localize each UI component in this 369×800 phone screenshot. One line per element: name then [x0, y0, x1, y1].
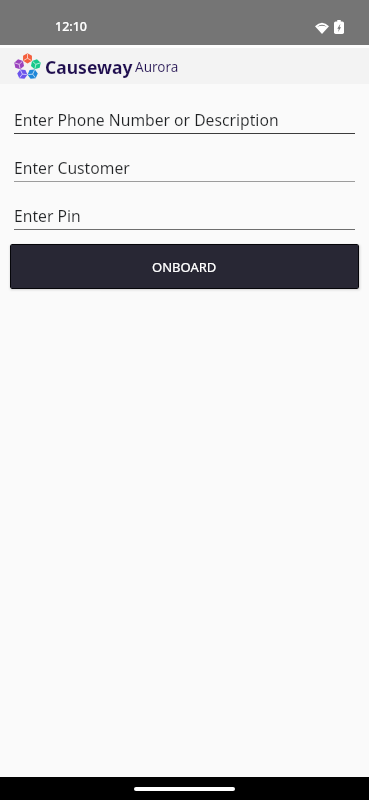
other: Wi-Fi — [315, 22, 329, 34]
button[interactable]: Home — [134, 787, 235, 791]
staticText: Enter Phone Number or Description — [14, 109, 279, 130]
staticText: ONBOARD — [152, 258, 217, 276]
staticText: Enter Customer — [14, 157, 130, 178]
other: Battery charging — [334, 20, 344, 34]
staticText: Causeway — [45, 55, 133, 79]
staticText: Aurora — [135, 58, 179, 76]
button[interactable]: Enter Phone Number or Description — [0, 105, 369, 153]
button[interactable]: Enter Pin — [0, 201, 369, 249]
staticText: Enter Pin — [14, 205, 81, 226]
button[interactable]: ONBOARD — [10, 244, 359, 289]
staticText: 12:10 — [55, 18, 88, 35]
button[interactable]: Enter Customer — [0, 153, 369, 201]
